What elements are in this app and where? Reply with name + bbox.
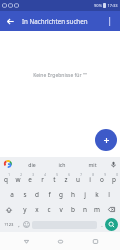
staticText: ?123 (4, 222, 14, 228)
button[interactable]: . (98, 218, 105, 231)
button[interactable]: f (43, 187, 55, 202)
staticText: e (28, 175, 32, 184)
button[interactable]: s (18, 187, 31, 202)
staticText: d (35, 190, 39, 199)
staticText: a (10, 190, 14, 199)
staticText: o (100, 175, 104, 184)
button[interactable]: y (18, 202, 31, 217)
button[interactable]: e (24, 171, 36, 187)
button[interactable]: Umschalt (0, 202, 18, 217)
staticText: 7 (80, 173, 82, 177)
staticText: z (64, 175, 68, 184)
button[interactable]: Spracheingabe (107, 157, 120, 171)
staticText: s (23, 190, 27, 199)
button[interactable]: b (67, 202, 79, 217)
staticText: 90% (94, 3, 102, 8)
button[interactable]: Eingabemarke (100, 11, 120, 31)
button[interactable]: p (108, 171, 120, 187)
button[interactable]: x (31, 202, 43, 217)
staticText: c (47, 205, 51, 214)
staticText: r (41, 175, 44, 184)
button[interactable]: j (79, 187, 91, 202)
staticText: 3 (32, 173, 34, 177)
staticText: Keine Ergebnisse für "" (33, 72, 87, 79)
button[interactable]: n (79, 202, 91, 217)
staticText: ich (58, 161, 66, 168)
staticText: 8 (92, 173, 94, 177)
staticText: 17:33 (107, 3, 118, 8)
staticText: y (23, 205, 27, 214)
staticText: n (83, 205, 87, 214)
button[interactable]: c (43, 202, 55, 217)
button[interactable]: h (67, 187, 79, 202)
staticText: 6 (68, 173, 70, 177)
button[interactable]: o (96, 171, 108, 187)
button[interactable]: w (12, 171, 24, 187)
button[interactable]: Suchen (105, 218, 118, 231)
button[interactable]: r (36, 171, 48, 187)
button[interactable]: d (31, 187, 43, 202)
button[interactable]: m (91, 202, 103, 217)
staticText: die (28, 161, 36, 168)
button[interactable]: v (55, 202, 67, 217)
staticText: , (18, 221, 20, 228)
button[interactable]: Google (0, 157, 16, 171)
staticText: In Nachrichten suchen (22, 17, 88, 25)
button[interactable]: Emoji (22, 218, 31, 231)
staticText: i (89, 175, 91, 184)
button[interactable]: u (72, 171, 84, 187)
staticText: k (95, 190, 99, 199)
staticText: f (48, 190, 51, 199)
button[interactable]: t (48, 171, 60, 187)
button[interactable]: Neue Nachricht (95, 129, 117, 151)
staticText: mit (88, 161, 97, 168)
button[interactable]: a (5, 187, 18, 202)
staticText: . (101, 221, 103, 228)
button[interactable]: i (84, 171, 96, 187)
staticText: x (35, 205, 39, 214)
button[interactable]: q (0, 171, 12, 187)
button[interactable]: Zurück (0, 11, 20, 31)
button[interactable]: Löschen (103, 202, 120, 217)
button[interactable]: die (16, 157, 47, 171)
button[interactable]: l (103, 187, 115, 202)
staticText: q (4, 175, 8, 184)
button[interactable]: Startbildschirm (51, 232, 69, 250)
staticText: t (53, 175, 56, 184)
staticText: 2 (20, 173, 22, 177)
button[interactable]: , (15, 218, 22, 231)
staticText: m (94, 205, 100, 214)
button[interactable]: Zurück (17, 232, 35, 250)
staticText: p (112, 175, 116, 184)
button[interactable]: k (91, 187, 103, 202)
staticText: b (71, 205, 75, 214)
button[interactable]: ich (47, 157, 77, 171)
staticText: v (59, 205, 63, 214)
button[interactable]: g (55, 187, 67, 202)
staticText: 5 (56, 173, 58, 177)
staticText: 1 (8, 173, 10, 177)
button[interactable]: Übersicht (86, 232, 104, 250)
staticText: j (84, 190, 86, 199)
staticText: 4 (44, 173, 46, 177)
button[interactable]: mit (77, 157, 107, 171)
staticText: 9 (104, 173, 106, 177)
staticText: w (15, 175, 21, 184)
staticText: 0 (116, 173, 118, 177)
button[interactable]: z (60, 171, 72, 187)
staticText: u (76, 175, 80, 184)
button[interactable]: ?123 (2, 218, 15, 231)
staticText: l (108, 190, 110, 199)
staticText: h (71, 190, 75, 199)
staticText: g (59, 190, 63, 199)
